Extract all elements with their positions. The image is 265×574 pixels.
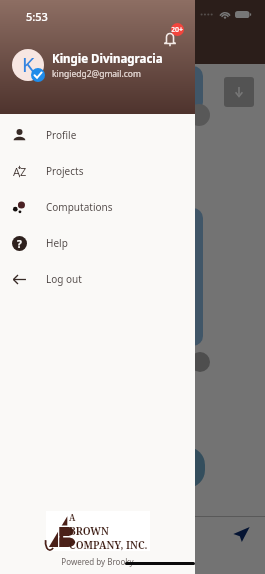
staticText: A: [69, 512, 76, 524]
button[interactable]: Send: [233, 526, 250, 543]
staticText: Powered by Brooky: [0, 556, 195, 567]
staticText: 20+: [171, 25, 184, 35]
staticText: ?: [17, 237, 22, 251]
staticText: COMPANY, INC.: [69, 538, 148, 552]
button[interactable]: Computations: [0, 189, 195, 225]
button[interactable]: AZ: [0, 153, 195, 189]
staticText: kingiedg2@gmail.com: [52, 68, 141, 80]
staticText: 5:53: [26, 9, 48, 24]
button[interactable]: Log out: [0, 261, 195, 297]
button[interactable]: ?: [0, 225, 195, 261]
staticText: Help: [46, 236, 68, 250]
staticText: AZ: [13, 164, 27, 179]
staticText: BROWN: [69, 524, 109, 538]
staticText: Projects: [46, 164, 84, 178]
staticText: Profile: [46, 128, 77, 142]
button[interactable]: Notifications: [162, 31, 178, 47]
staticText: Kingie Divinagracia: [52, 51, 163, 67]
button[interactable]: Download: [224, 77, 254, 107]
staticText: K: [22, 51, 35, 78]
staticText: Log out: [46, 272, 82, 286]
staticText: Computations: [46, 200, 113, 214]
button[interactable]: Profile: [0, 117, 195, 153]
